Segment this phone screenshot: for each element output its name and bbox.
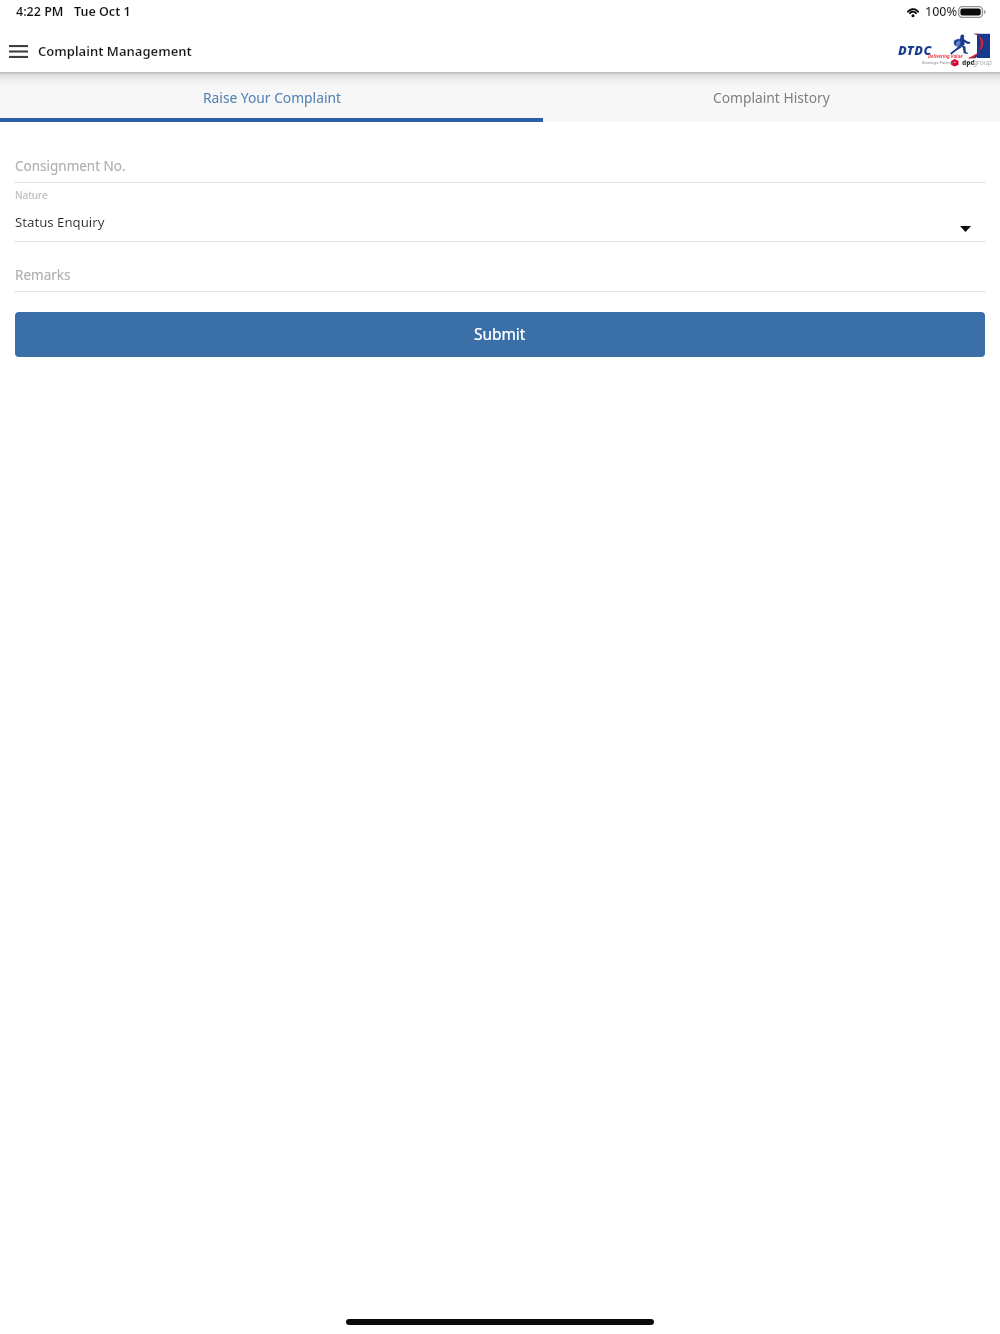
button[interactable]: Raise Your Complaint: [0, 73, 543, 122]
staticText: Nature: [15, 188, 48, 202]
staticText: DTDC: [898, 41, 932, 58]
staticText: group: [973, 58, 992, 67]
button[interactable]: Nature, Status Enquiry: [14, 185, 986, 242]
button[interactable]: Submit: [15, 312, 985, 357]
staticText: Strategic Partner :: [922, 60, 956, 65]
button[interactable]: Remarks: [14, 258, 986, 292]
staticText: Remarks: [15, 266, 71, 284]
staticText: Consignment No.: [15, 157, 126, 175]
staticText: Tue Oct 1: [74, 3, 131, 20]
staticText: Delivering Value: [928, 53, 963, 59]
staticText: dpd: [962, 58, 975, 67]
staticText: Raise Your Complaint: [203, 88, 341, 107]
button[interactable]: Complaint History: [543, 73, 1000, 122]
staticText: Complaint Management: [38, 42, 192, 60]
button[interactable]: Consignment No.: [14, 150, 986, 183]
staticText: Complaint History: [713, 88, 830, 107]
staticText: Submit: [474, 324, 526, 345]
button[interactable]: DTDC logo: [898, 33, 990, 66]
staticText: Status Enquiry: [15, 213, 105, 231]
button[interactable]: Open navigation menu: [4, 36, 33, 66]
staticText: 4:22 PM: [16, 3, 64, 20]
staticText: 100%: [925, 3, 958, 20]
